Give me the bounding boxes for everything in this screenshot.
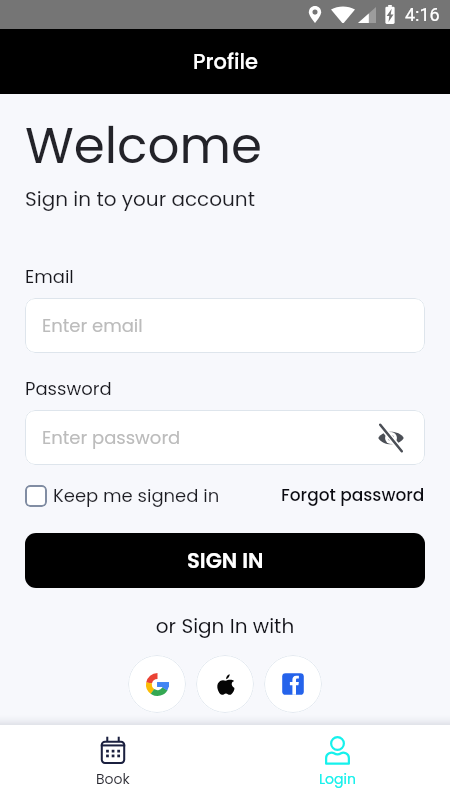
staticText: Book bbox=[96, 769, 130, 789]
staticText: Welcome bbox=[25, 111, 262, 181]
button[interactable]: Forgot password bbox=[281, 483, 425, 507]
staticText: Keep me signed in bbox=[53, 483, 220, 508]
button[interactable]: Login bbox=[225, 725, 450, 800]
button[interactable]: Keep me signed in bbox=[25, 483, 220, 508]
button[interactable]: Sign in with Apple bbox=[196, 655, 254, 713]
staticText: SIGN IN bbox=[187, 546, 264, 575]
button[interactable]: Enter password bbox=[25, 410, 425, 465]
button[interactable]: Show password bbox=[370, 417, 412, 459]
staticText: 4:16 bbox=[405, 4, 440, 25]
staticText: Password bbox=[25, 376, 112, 401]
staticText: Profile bbox=[193, 47, 258, 76]
staticText: Enter password bbox=[42, 425, 181, 450]
button[interactable]: Sign in with Google bbox=[128, 655, 186, 713]
staticText: Login bbox=[319, 769, 356, 789]
button[interactable]: Enter email bbox=[25, 298, 425, 353]
staticText: Enter email bbox=[42, 313, 143, 338]
staticText: or Sign In with bbox=[0, 612, 450, 640]
staticText: Email bbox=[25, 264, 74, 289]
staticText: Sign in to your account bbox=[25, 185, 255, 213]
button[interactable]: SIGN IN bbox=[25, 533, 425, 588]
button[interactable]: Sign in with Facebook bbox=[264, 655, 322, 713]
button[interactable]: Book bbox=[0, 725, 225, 800]
